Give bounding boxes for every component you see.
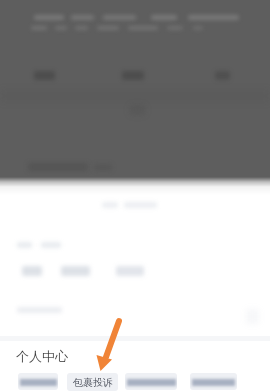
staticText: 个人中心 xyxy=(16,348,68,364)
button[interactable]: 设置 xyxy=(190,373,237,390)
button[interactable]: 包裹投诉 xyxy=(67,373,118,391)
staticText: 包裹投诉 xyxy=(73,376,113,389)
button[interactable]: 快递查询 xyxy=(18,373,58,390)
button[interactable]: 我的订单 xyxy=(125,373,177,390)
